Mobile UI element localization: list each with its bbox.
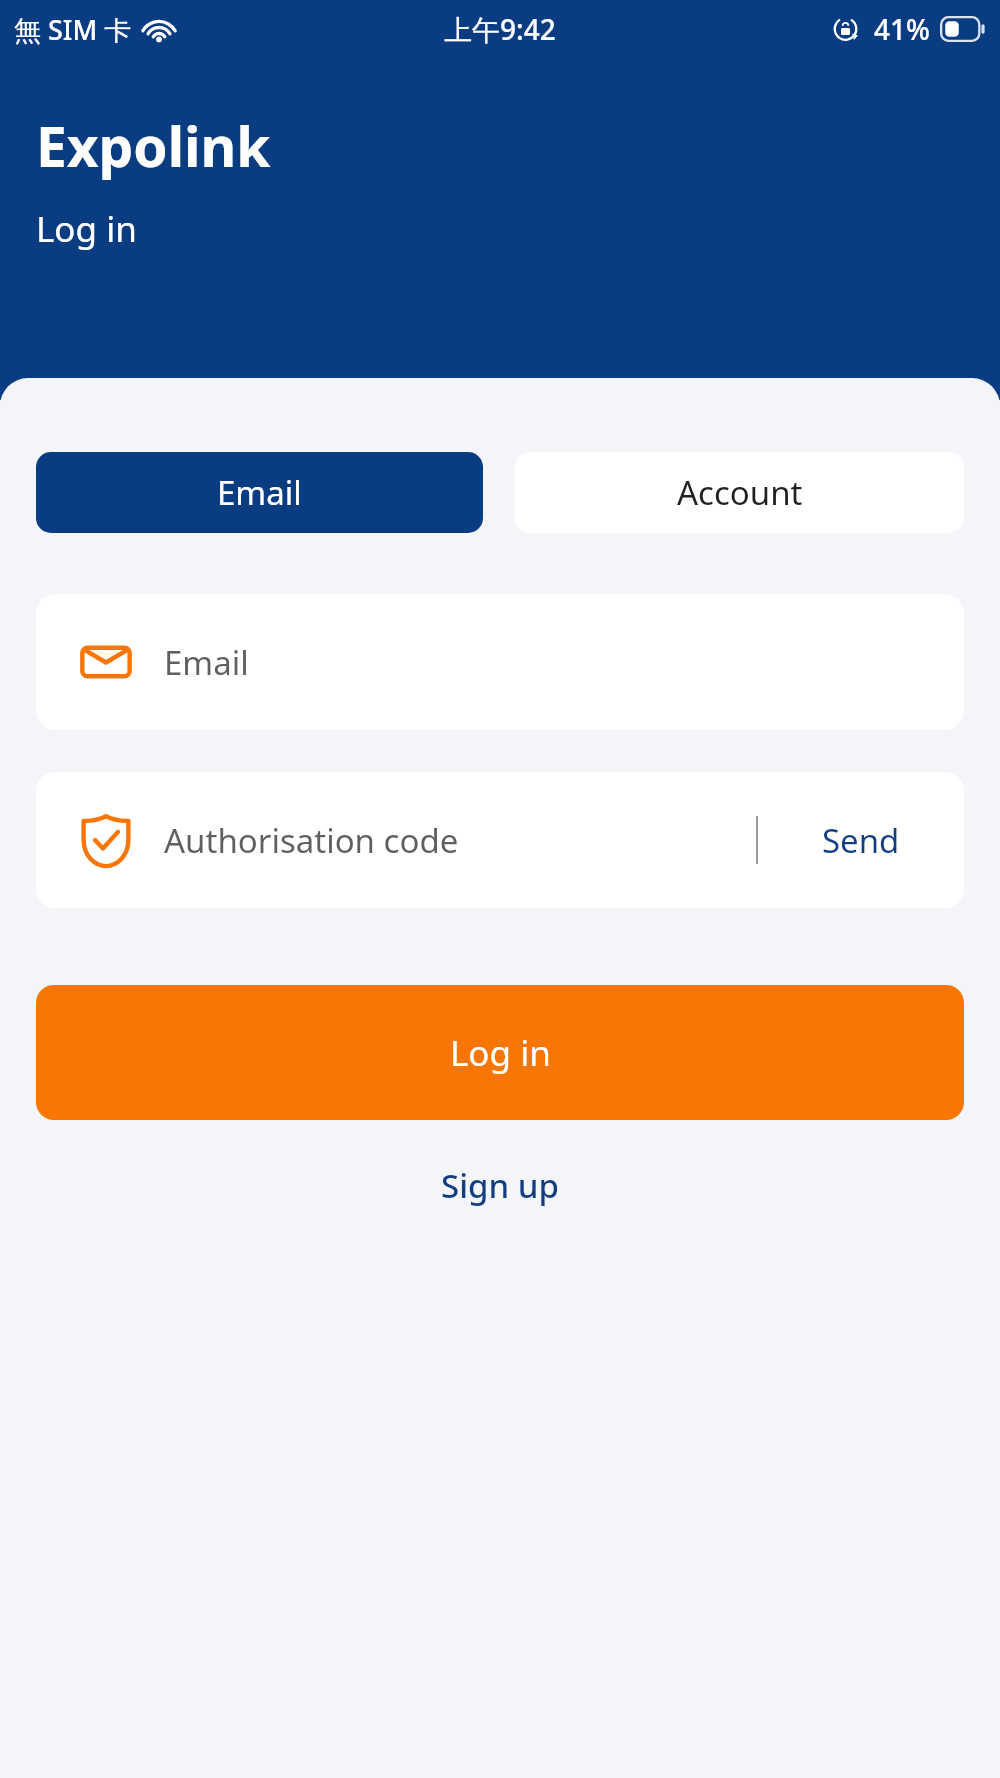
staticText: Log in: [36, 205, 137, 253]
other: Authorisation code: [80, 811, 132, 869]
staticText: Send: [822, 818, 900, 863]
staticText: 41%: [874, 10, 930, 48]
staticText: Log in: [450, 1029, 551, 1077]
staticText: 無 SIM 卡: [14, 11, 132, 48]
staticText: Sign up: [441, 1163, 559, 1208]
button[interactable]: Authorisation code: [36, 772, 964, 908]
button[interactable]: Send: [758, 772, 964, 908]
other: Rotation locked: [832, 14, 862, 44]
staticText: Expolink: [36, 108, 271, 183]
staticText: 上午9:42: [444, 10, 556, 48]
other: Email: [80, 636, 132, 688]
staticText: Email: [164, 640, 249, 685]
button[interactable]: Account: [515, 452, 964, 533]
button[interactable]: Email: [36, 452, 483, 533]
staticText: Account: [677, 470, 803, 515]
button[interactable]: Sign up: [0, 1138, 1000, 1232]
button[interactable]: Log in: [36, 985, 964, 1120]
staticText: Authorisation code: [164, 818, 459, 863]
staticText: Email: [217, 470, 302, 515]
other: Battery 41 percent: [940, 16, 986, 42]
button[interactable]: Email: [36, 594, 964, 730]
